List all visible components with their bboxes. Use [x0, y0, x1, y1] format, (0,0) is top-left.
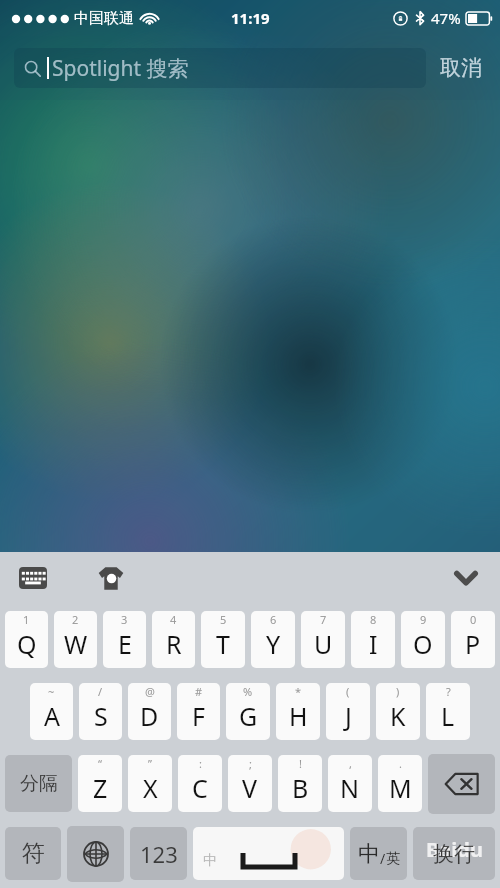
staticText: 中	[203, 852, 217, 870]
staticText: G	[239, 699, 258, 733]
staticText: 47%	[431, 8, 461, 28]
staticText: .	[399, 756, 402, 771]
staticText: S	[94, 699, 108, 733]
staticText: J	[345, 699, 352, 733]
staticText: 换行	[433, 841, 475, 867]
staticText: W	[64, 627, 88, 661]
staticText: 符	[22, 839, 45, 868]
staticText: %	[243, 684, 253, 699]
staticText: ”	[148, 756, 152, 771]
staticText: ?	[446, 684, 451, 699]
button[interactable]: 123	[130, 827, 187, 880]
staticText: (	[346, 684, 350, 699]
staticText: “	[98, 756, 102, 771]
staticText: 取消	[440, 55, 482, 81]
staticText: N	[340, 771, 360, 805]
staticText: M	[389, 771, 412, 805]
staticText: 9	[420, 612, 427, 627]
staticText: ,	[349, 756, 352, 771]
staticText: U	[314, 627, 333, 661]
staticText: *	[295, 684, 302, 699]
button[interactable]: :	[178, 755, 222, 812]
button[interactable]: 9	[401, 611, 445, 668]
staticText: L	[441, 699, 455, 733]
button[interactable]: 4	[152, 611, 195, 668]
staticText: 中国联通	[74, 9, 134, 28]
staticText: @	[145, 684, 155, 699]
staticText: D	[140, 699, 159, 733]
button[interactable]: ;	[228, 755, 272, 812]
button[interactable]: (	[326, 683, 370, 740]
button[interactable]: Backspace	[428, 754, 495, 814]
staticText: F	[192, 699, 205, 733]
staticText: 3	[121, 612, 128, 627]
staticText: 0	[470, 612, 477, 627]
staticText: 1	[23, 612, 30, 627]
staticText: Y	[266, 627, 281, 661]
button[interactable]: Theme	[94, 561, 128, 595]
staticText: 2	[72, 612, 79, 627]
button[interactable]: 2	[54, 611, 97, 668]
staticText: O	[413, 627, 433, 661]
button[interactable]: 6	[251, 611, 295, 668]
button[interactable]: ”	[128, 755, 172, 812]
button[interactable]: 取消	[436, 49, 486, 87]
button[interactable]: )	[376, 683, 420, 740]
staticText: P	[465, 627, 481, 661]
button[interactable]: %	[226, 683, 270, 740]
staticText: 5	[220, 612, 227, 627]
staticText: Spotlight 搜索	[52, 54, 189, 83]
staticText: 7	[320, 612, 327, 627]
button[interactable]: ?	[426, 683, 470, 740]
staticText: !	[299, 756, 302, 771]
staticText: A	[44, 699, 60, 733]
button[interactable]: 7	[301, 611, 345, 668]
staticText: ;	[249, 756, 252, 771]
button[interactable]: 5	[201, 611, 245, 668]
button[interactable]: @	[128, 683, 171, 740]
staticText: 英	[386, 850, 400, 868]
button[interactable]: ,	[328, 755, 372, 812]
staticText: Z	[93, 771, 108, 805]
staticText: I	[369, 627, 378, 661]
button[interactable]: #	[177, 683, 220, 740]
staticText: /	[98, 684, 103, 699]
button[interactable]: 符	[5, 827, 61, 880]
button[interactable]: “	[78, 755, 122, 812]
button[interactable]: !	[278, 755, 322, 812]
button[interactable]: 8	[351, 611, 395, 668]
staticText: E	[118, 627, 132, 661]
staticText: C	[192, 771, 208, 805]
staticText: T	[216, 627, 230, 661]
button[interactable]: 1	[5, 611, 48, 668]
button[interactable]: /	[79, 683, 122, 740]
staticText: #	[195, 684, 203, 699]
staticText: 8	[370, 612, 377, 627]
button[interactable]: Space	[193, 827, 344, 880]
button[interactable]: Hide keyboard	[446, 558, 486, 598]
button[interactable]: Switch language	[67, 826, 124, 882]
button[interactable]: Spotlight 搜索	[14, 48, 426, 88]
staticText: B	[292, 771, 309, 805]
button[interactable]: ~	[30, 683, 73, 740]
button[interactable]: Baidu	[413, 827, 495, 880]
button[interactable]: 分隔	[5, 755, 72, 812]
button[interactable]: 0	[451, 611, 495, 668]
button[interactable]: *	[276, 683, 320, 740]
button[interactable]: 中	[350, 827, 407, 880]
staticText: V	[242, 771, 258, 805]
staticText: 123	[140, 839, 178, 869]
staticText: :	[199, 756, 202, 771]
button[interactable]: Keyboard layout	[16, 561, 50, 595]
staticText: ~	[48, 684, 55, 699]
button[interactable]: .	[378, 755, 422, 812]
button[interactable]: 3	[103, 611, 146, 668]
staticText: Q	[17, 627, 37, 661]
staticText: 6	[270, 612, 277, 627]
staticText: K	[390, 699, 406, 733]
staticText: /	[380, 849, 386, 868]
staticText: H	[289, 699, 308, 733]
staticText: X	[143, 771, 158, 805]
staticText: Baidu	[426, 836, 483, 863]
staticText: 4	[170, 612, 177, 627]
